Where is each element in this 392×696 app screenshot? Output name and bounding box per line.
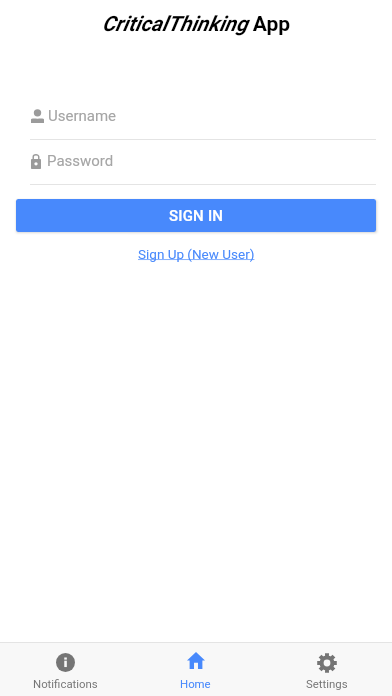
button[interactable]: Password [31,152,392,170]
other: Notifications [56,653,75,672]
other: Settings [317,653,337,673]
staticText: Notifications [33,677,98,690]
button[interactable]: Home [130,643,261,696]
staticText: Home [180,677,211,690]
staticText: SIGN IN [169,207,224,225]
staticText: CriticalThinking App [102,12,291,37]
staticText: Settings [306,677,348,690]
button[interactable]: Username [31,107,392,125]
other: Home [187,652,205,669]
button[interactable]: Settings [261,643,392,696]
staticText: Password [47,152,114,170]
button[interactable]: Sign Up (New User) [138,246,255,262]
button[interactable]: Notifications [0,643,130,696]
button[interactable]: SIGN IN [16,199,376,232]
staticText: Username [48,107,117,125]
